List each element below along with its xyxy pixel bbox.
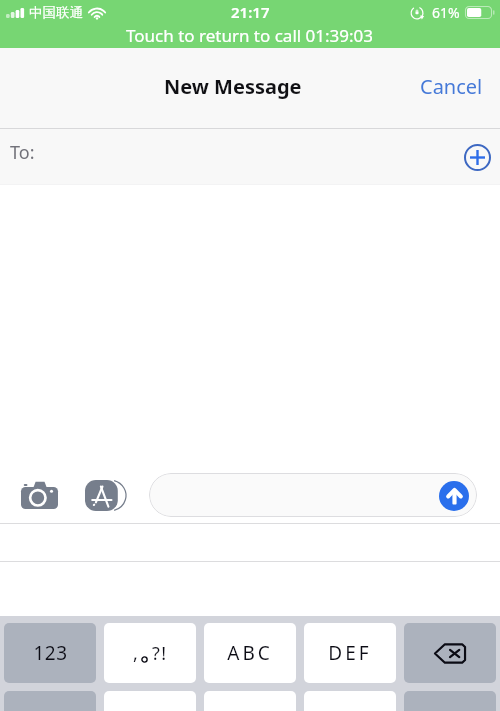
staticText: , [133,641,138,666]
button[interactable]: Send [439,481,469,511]
button[interactable]: , [104,623,196,683]
staticText: ?! [152,641,168,666]
button[interactable]: App Store [80,475,126,515]
button[interactable]: GHI [104,691,196,711]
staticText: Cancel [420,73,483,100]
staticText: Touch to return to call 01:39:03 [126,24,374,47]
button[interactable]: Add contact [460,140,494,174]
button[interactable]: ABC [204,623,296,683]
staticText: DEF [328,640,372,666]
staticText: 21:17 [231,2,270,22]
button[interactable]: 123 [4,623,96,683]
staticText: 61% [432,3,460,22]
staticText: 中国联通 [29,4,83,21]
button[interactable]: Camera [14,474,64,516]
staticText: New Message [164,73,302,100]
staticText: To: [10,140,35,165]
staticText: 123 [33,640,68,666]
button[interactable]: Cancel [412,66,491,107]
staticText: ABC [227,640,273,666]
button[interactable] [149,473,477,517]
button[interactable]: DEF [304,623,396,683]
button[interactable] [404,623,496,683]
button[interactable]: MNO [304,691,396,711]
button[interactable]: JKL [204,691,296,711]
